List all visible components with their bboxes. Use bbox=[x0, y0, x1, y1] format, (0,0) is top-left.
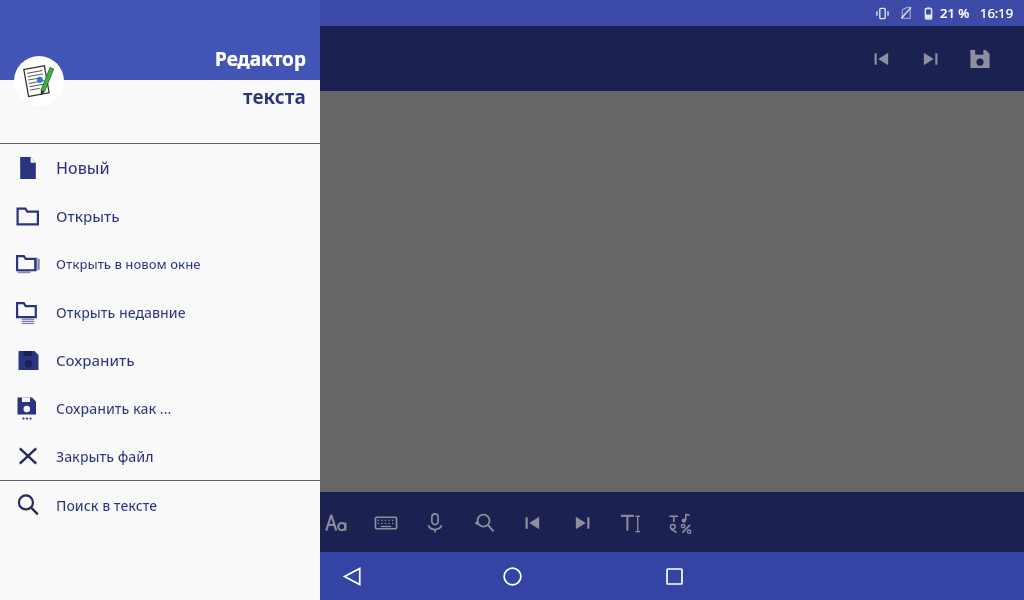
button[interactable]: Save bbox=[958, 37, 1002, 81]
button[interactable]: Text format bbox=[606, 492, 655, 554]
button[interactable]: Home bbox=[480, 552, 544, 600]
button[interactable]: Previous match bbox=[508, 492, 557, 554]
button[interactable]: Go to end bbox=[908, 37, 952, 81]
staticText: 16:19 bbox=[980, 4, 1014, 22]
button[interactable]: Font size bbox=[312, 492, 361, 554]
staticText: 21 % bbox=[940, 4, 970, 22]
button[interactable]: Открыть недавние bbox=[0, 288, 320, 336]
staticText: Открыть bbox=[56, 206, 120, 226]
button[interactable]: Voice input bbox=[410, 492, 459, 554]
button[interactable]: Поиск в тексте bbox=[0, 481, 320, 529]
button[interactable]: Search again bbox=[459, 492, 508, 554]
staticText: Сохранить как ... bbox=[56, 399, 172, 418]
button[interactable]: Открыть в новом окне bbox=[0, 240, 320, 288]
button[interactable]: Keyboard bbox=[361, 492, 410, 554]
button[interactable]: Новый bbox=[0, 144, 320, 192]
staticText: Поиск в тексте bbox=[56, 496, 158, 515]
button[interactable]: Сохранить как ... bbox=[0, 384, 320, 432]
button[interactable]: Сохранить bbox=[0, 336, 320, 384]
button[interactable]: Special characters bbox=[655, 492, 704, 554]
button[interactable]: Next match bbox=[557, 492, 606, 554]
staticText: Закрыть файл bbox=[56, 447, 154, 466]
staticText: Открыть в новом окне bbox=[56, 255, 201, 273]
staticText: Редактор bbox=[215, 46, 306, 72]
button[interactable]: Recents bbox=[642, 552, 706, 600]
button[interactable]: Back bbox=[320, 552, 384, 600]
staticText: Открыть недавние bbox=[56, 303, 186, 322]
button[interactable]: Открыть bbox=[0, 192, 320, 240]
button[interactable]: Закрыть файл bbox=[0, 432, 320, 480]
button[interactable]: Go to start bbox=[860, 37, 904, 81]
staticText: Сохранить bbox=[56, 350, 135, 370]
staticText: Новый bbox=[56, 157, 110, 179]
staticText: текста bbox=[243, 84, 306, 110]
